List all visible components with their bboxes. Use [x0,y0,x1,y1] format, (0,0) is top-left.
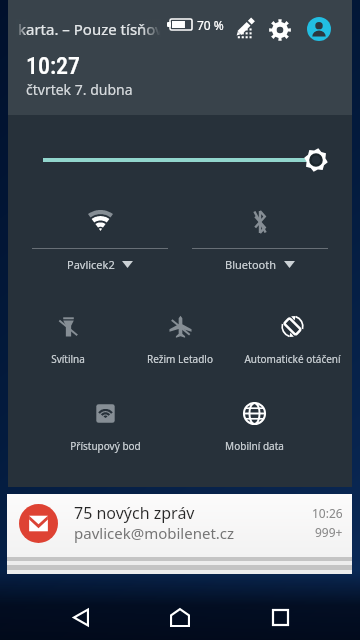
staticText: Bluetooth [225,257,277,272]
staticText: pavlicek@mobilenet.cz [74,523,235,543]
staticText: Mobilní data [225,439,284,453]
button[interactable]: Recents [256,593,304,640]
button[interactable]: Pavlicek2 [32,200,168,280]
button[interactable]: Automatické otáčení [232,315,352,371]
button[interactable]: Edit tiles [235,19,255,39]
staticText: 75 nových zpráv [74,502,195,524]
staticText: Automatické otáčení [244,352,341,366]
button[interactable]: 75 nových zpráv [7,494,352,557]
button[interactable]: Režim Letadlo [120,315,240,371]
button[interactable]: Svítilna [8,315,128,371]
staticText: 10:27 [26,52,81,80]
staticText: karta. – Pouze tísňová volání [18,19,162,37]
staticText: Svítilna [51,352,85,366]
staticText: čtvrtek 7. dubna [26,80,133,99]
button[interactable]: Home [156,593,204,640]
button[interactable]: Mobilní data [194,402,314,458]
staticText: Pavlicek2 [67,257,115,272]
button[interactable]: Přístupový bod [45,402,165,458]
staticText: Přístupový bod [70,439,141,453]
button[interactable]: Back [56,593,104,640]
staticText: Režim Letadlo [147,352,213,366]
button[interactable]: Bluetooth [192,200,328,280]
button[interactable]: User profile [307,17,331,41]
staticText: 70 % [197,17,224,33]
staticText: 10:26 [312,505,343,521]
staticText: 999+ [315,524,343,540]
button[interactable]: Settings [269,19,291,41]
button[interactable]: Brightness [30,140,330,180]
